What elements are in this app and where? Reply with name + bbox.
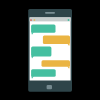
button[interactable]: Chat messages illustration [0, 0, 100, 100]
